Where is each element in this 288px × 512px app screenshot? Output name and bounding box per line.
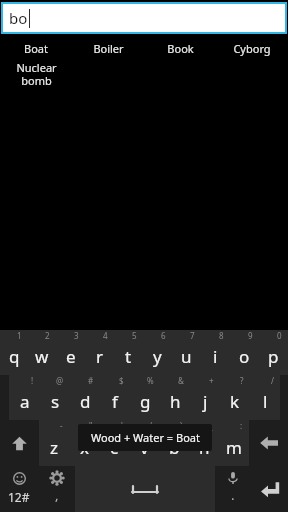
staticText: / xyxy=(271,375,274,386)
staticText: 2 xyxy=(45,330,50,341)
staticText: t xyxy=(125,345,132,368)
button[interactable]: ) xyxy=(159,420,189,466)
button[interactable]: " xyxy=(69,420,99,466)
staticText: y xyxy=(153,345,162,368)
staticText: Boat xyxy=(24,41,48,56)
staticText: 3 xyxy=(74,330,79,341)
staticText: r xyxy=(96,345,104,368)
staticText: 1 xyxy=(17,330,22,341)
staticText: v xyxy=(140,436,149,459)
button[interactable]: Symbols xyxy=(0,466,38,512)
button[interactable]: ? xyxy=(220,375,250,420)
staticText: a xyxy=(20,390,30,413)
button[interactable]: % xyxy=(130,375,160,420)
button[interactable]: : xyxy=(219,420,249,466)
button[interactable]: 1 xyxy=(0,330,28,375)
staticText: + xyxy=(209,375,214,386)
staticText: m xyxy=(226,436,242,459)
button[interactable]: Backspace xyxy=(249,420,288,466)
staticText: _ xyxy=(209,420,213,431)
staticText: l xyxy=(263,390,268,413)
staticText: Wood + Water = Boat xyxy=(91,430,200,445)
button[interactable]: 6 xyxy=(143,330,172,375)
staticText: : xyxy=(240,420,243,431)
staticText: 12# xyxy=(8,489,30,505)
staticText: - xyxy=(60,420,63,431)
button[interactable]: / xyxy=(250,375,280,420)
staticText: , xyxy=(55,486,59,504)
button[interactable]: 9 xyxy=(230,330,259,375)
button[interactable]: _ xyxy=(189,420,219,466)
staticText: u xyxy=(181,345,192,368)
staticText: # xyxy=(88,375,94,386)
button[interactable]: @ xyxy=(40,375,70,420)
staticText: 7 xyxy=(190,330,195,341)
button[interactable]: Book xyxy=(144,36,216,60)
staticText: k xyxy=(230,390,240,413)
staticText: x xyxy=(80,436,89,459)
staticText: Book xyxy=(167,41,194,56)
button[interactable]: Enter xyxy=(251,466,288,512)
staticText: 9 xyxy=(248,330,253,341)
staticText: ? xyxy=(240,375,244,386)
button[interactable]: 0 xyxy=(259,330,288,375)
staticText: q xyxy=(9,345,20,368)
staticText: i xyxy=(213,345,218,368)
staticText: e xyxy=(66,345,76,368)
button[interactable]: Shift xyxy=(0,420,39,466)
button[interactable]: # xyxy=(70,375,100,420)
staticText: j xyxy=(203,390,208,413)
staticText: o xyxy=(239,345,250,368)
staticText: Boiler xyxy=(93,41,124,56)
staticText: Nuclear bomb xyxy=(16,60,57,88)
button[interactable]: bo xyxy=(3,4,285,32)
staticText: f xyxy=(112,390,118,413)
staticText: n xyxy=(199,436,210,459)
staticText: % xyxy=(147,375,154,386)
staticText: bo xyxy=(9,8,28,28)
staticText: " xyxy=(89,420,93,431)
staticText: ) xyxy=(180,420,183,431)
button[interactable]: 5 xyxy=(114,330,143,375)
staticText: @ xyxy=(56,375,64,386)
button[interactable]: Nuclear bomb xyxy=(0,60,72,98)
staticText: 5 xyxy=(132,330,137,341)
staticText: w xyxy=(35,345,49,368)
staticText: 0 xyxy=(277,330,282,341)
staticText: c xyxy=(110,436,119,459)
button[interactable]: ( xyxy=(129,420,159,466)
button[interactable]: Settings xyxy=(38,466,75,512)
staticText: & xyxy=(178,375,184,386)
button[interactable]: ' xyxy=(99,420,129,466)
staticText: ( xyxy=(150,420,153,431)
staticText: 8 xyxy=(219,330,224,341)
button[interactable]: 3 xyxy=(56,330,85,375)
staticText: ' xyxy=(121,420,123,431)
button[interactable]: 7 xyxy=(172,330,201,375)
button[interactable]: Cyborg xyxy=(216,36,288,60)
staticText: b xyxy=(169,436,180,459)
button[interactable]: - xyxy=(39,420,69,466)
staticText: 6 xyxy=(161,330,166,341)
button[interactable]: Voice input xyxy=(215,466,251,512)
staticText: ! xyxy=(31,375,34,386)
button[interactable]: Boat xyxy=(0,36,72,60)
button[interactable]: 2 xyxy=(28,330,56,375)
staticText: 4 xyxy=(103,330,108,341)
button[interactable]: 8 xyxy=(201,330,230,375)
button[interactable]: 4 xyxy=(85,330,114,375)
button[interactable]: ! xyxy=(9,375,40,420)
staticText: . xyxy=(231,486,235,504)
button[interactable]: Space xyxy=(75,466,215,512)
button[interactable]: $ xyxy=(100,375,130,420)
button[interactable]: Boiler xyxy=(72,36,144,60)
button[interactable]: + xyxy=(190,375,220,420)
staticText: p xyxy=(268,345,279,368)
staticText: d xyxy=(80,390,91,413)
button[interactable]: & xyxy=(160,375,190,420)
staticText: s xyxy=(51,390,60,413)
staticText: Cyborg xyxy=(233,41,271,56)
staticText: g xyxy=(140,390,151,413)
staticText: $ xyxy=(119,375,124,386)
staticText: z xyxy=(50,436,58,459)
